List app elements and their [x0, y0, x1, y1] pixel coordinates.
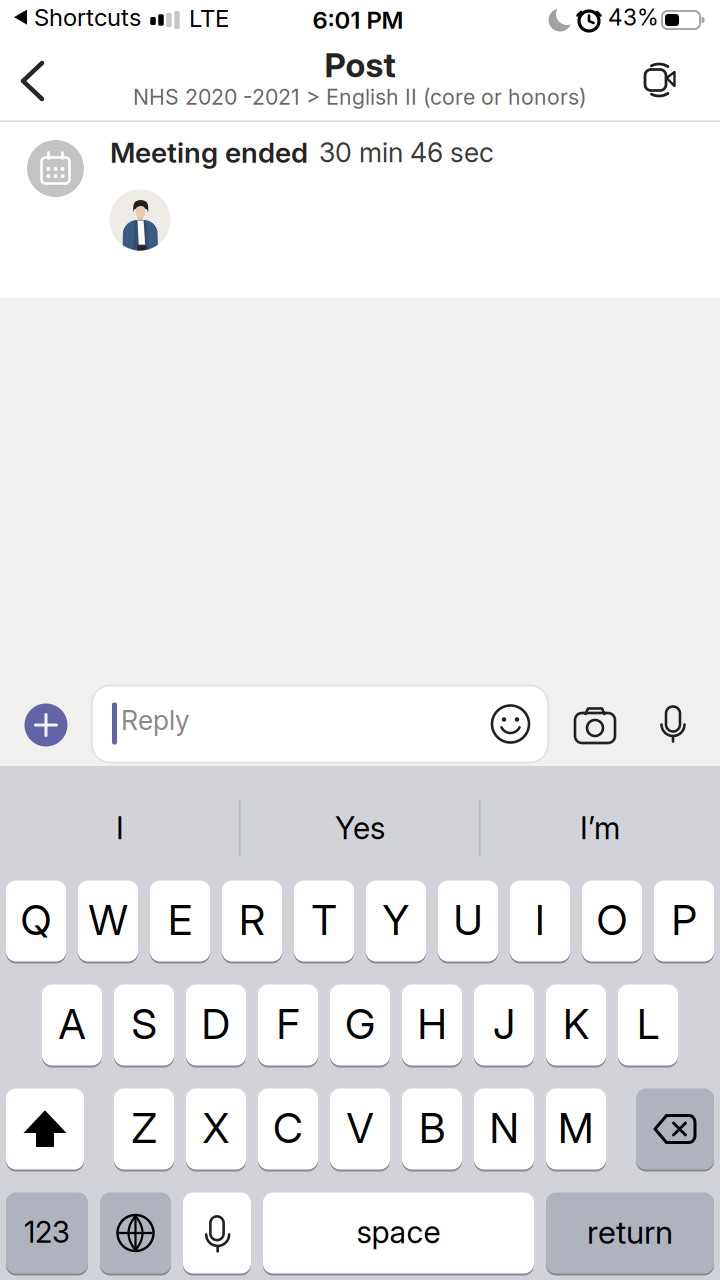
- button[interactable]: Z: [114, 1087, 174, 1170]
- staticText: Reply: [121, 704, 190, 736]
- staticText: B: [419, 1104, 445, 1152]
- staticText: Q: [20, 896, 51, 944]
- button[interactable]: [24, 703, 67, 746]
- staticText: NHS 2020 -2021 > English II (core or hon…: [133, 84, 587, 110]
- button[interactable]: W: [78, 879, 138, 962]
- staticText: return: [587, 1213, 673, 1251]
- staticText: G: [345, 1000, 375, 1048]
- button[interactable]: 123: [6, 1191, 88, 1274]
- button[interactable]: [636, 1087, 714, 1170]
- staticText: I: [535, 896, 545, 944]
- button[interactable]: [6, 1087, 84, 1170]
- staticText: L: [637, 1000, 659, 1048]
- button[interactable]: Q: [6, 879, 66, 962]
- staticText: C: [273, 1104, 303, 1152]
- button[interactable]: [20, 61, 46, 101]
- staticText: D: [201, 1000, 230, 1048]
- button[interactable]: Yes: [250, 783, 470, 873]
- button[interactable]: P: [654, 879, 714, 962]
- button[interactable]: N: [474, 1087, 534, 1170]
- staticText: T: [311, 896, 336, 944]
- staticText: P: [671, 896, 696, 944]
- button[interactable]: I: [510, 879, 570, 962]
- button[interactable]: Shortcuts: [14, 3, 141, 31]
- button[interactable]: K: [546, 983, 606, 1066]
- button[interactable]: G: [330, 983, 390, 1066]
- staticText: V: [346, 1104, 373, 1152]
- staticText: Meeting ended: [110, 136, 308, 169]
- button[interactable]: [183, 1191, 251, 1274]
- staticText: I: [116, 810, 124, 846]
- staticText: H: [417, 1000, 446, 1048]
- button[interactable]: [109, 189, 170, 250]
- button[interactable]: J: [474, 983, 534, 1066]
- staticText: 6:01 PM: [312, 6, 403, 34]
- staticText: R: [239, 896, 265, 944]
- staticText: W: [88, 896, 127, 944]
- staticText: Z: [131, 1104, 156, 1152]
- staticText: F: [276, 1000, 299, 1048]
- staticText: LTE: [189, 4, 229, 32]
- button[interactable]: V: [330, 1087, 390, 1170]
- button[interactable]: B: [402, 1087, 462, 1170]
- button[interactable]: return: [546, 1191, 714, 1274]
- button[interactable]: I: [10, 783, 230, 873]
- staticText: S: [131, 1000, 156, 1048]
- staticText: J: [493, 1000, 515, 1048]
- staticText: 123: [24, 1215, 70, 1249]
- button[interactable]: D: [186, 983, 246, 1066]
- button[interactable]: X: [186, 1087, 246, 1170]
- staticText: K: [563, 1000, 589, 1048]
- staticText: E: [168, 896, 192, 944]
- button[interactable]: Y: [366, 879, 426, 962]
- button[interactable]: S: [114, 983, 174, 1066]
- staticText: I’m: [580, 810, 620, 846]
- button[interactable]: [660, 705, 686, 742]
- staticText: Y: [382, 896, 409, 944]
- staticText: M: [558, 1104, 594, 1152]
- button[interactable]: I’m: [490, 783, 710, 873]
- button[interactable]: [643, 60, 679, 100]
- button[interactable]: Reply: [92, 685, 548, 762]
- staticText: U: [453, 896, 482, 944]
- staticText: X: [202, 1104, 229, 1152]
- button[interactable]: [575, 707, 615, 743]
- button[interactable]: R: [222, 879, 282, 962]
- button[interactable]: H: [402, 983, 462, 1066]
- button[interactable]: [100, 1191, 171, 1274]
- button[interactable]: L: [618, 983, 678, 1066]
- staticText: Yes: [335, 810, 385, 846]
- staticText: Shortcuts: [34, 3, 141, 31]
- staticText: space: [356, 1214, 440, 1250]
- button[interactable]: A: [42, 983, 102, 1066]
- button[interactable]: E: [150, 879, 210, 962]
- staticText: O: [596, 896, 627, 944]
- button[interactable]: O: [582, 879, 642, 962]
- staticText: N: [489, 1104, 518, 1152]
- button[interactable]: U: [438, 879, 498, 962]
- button[interactable]: C: [258, 1087, 318, 1170]
- button[interactable]: space: [263, 1191, 534, 1274]
- staticText: 30 min 46 sec: [319, 137, 494, 168]
- button[interactable]: T: [294, 879, 354, 962]
- staticText: A: [58, 1000, 85, 1048]
- staticText: Post: [324, 45, 395, 85]
- button[interactable]: F: [258, 983, 318, 1066]
- button[interactable]: M: [546, 1087, 606, 1170]
- staticText: 43%: [608, 4, 659, 31]
